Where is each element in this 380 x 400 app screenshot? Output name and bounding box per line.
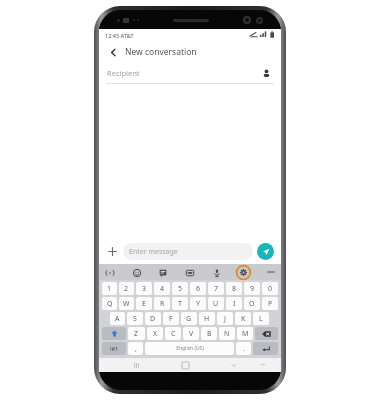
button[interactable]: X [147, 327, 163, 340]
button[interactable]: L [253, 312, 269, 325]
staticText: !#1 [110, 345, 119, 352]
staticText: W [123, 299, 130, 309]
staticText: I [233, 299, 236, 309]
button[interactable]: 8 [226, 282, 242, 295]
button[interactable]: U [208, 297, 224, 310]
button[interactable]: Emoji [130, 266, 143, 279]
staticText: C [171, 329, 176, 339]
button[interactable]: J [217, 312, 233, 325]
button[interactable]: Stickers [156, 266, 169, 279]
button[interactable]: Q [102, 297, 117, 310]
button[interactable]: P [262, 297, 278, 310]
staticText: . [243, 344, 245, 354]
button[interactable]: Keyboard settings [236, 265, 251, 280]
button[interactable]: 1 [102, 282, 117, 295]
staticText: A [115, 314, 120, 324]
button[interactable]: T [172, 297, 188, 310]
button[interactable]: D [145, 312, 161, 325]
button[interactable]: 5 [172, 282, 188, 295]
staticText: Q [107, 299, 113, 309]
button[interactable]: Recents [129, 358, 143, 372]
staticText: 6 [196, 284, 201, 294]
staticText: M [242, 329, 249, 339]
staticText: 8 [232, 284, 237, 294]
staticText: U [213, 299, 219, 309]
button[interactable]: Recipient [99, 63, 281, 83]
button[interactable]: 9 [244, 282, 260, 295]
button[interactable]: 0 [262, 282, 278, 295]
button[interactable]: Space, English US [145, 342, 234, 355]
staticText: T [178, 299, 182, 309]
button[interactable]: Voice input [210, 266, 223, 279]
button[interactable]: Send [257, 243, 274, 260]
button[interactable]: E [136, 297, 152, 310]
button[interactable]: G [181, 312, 197, 325]
button[interactable]: 7 [208, 282, 224, 295]
staticText: S [133, 314, 137, 324]
button[interactable]: I [226, 297, 242, 310]
button[interactable]: H [199, 312, 215, 325]
staticText: 1 [107, 284, 112, 294]
staticText: 12:45 AT&T [105, 32, 134, 39]
staticText: 3 [142, 284, 147, 294]
button[interactable]: K [235, 312, 251, 325]
button[interactable]: N [219, 327, 235, 340]
button[interactable]: 3 [136, 282, 152, 295]
button[interactable]: 2 [119, 282, 134, 295]
button[interactable]: Predictive text [103, 266, 116, 279]
button[interactable]: , [128, 342, 143, 355]
staticText: Recipient [107, 68, 140, 78]
button[interactable]: Z [128, 327, 145, 340]
staticText: R [160, 299, 165, 309]
button[interactable]: V [183, 327, 199, 340]
button[interactable]: Back [227, 358, 241, 372]
button[interactable]: C [165, 327, 181, 340]
button[interactable]: Home [178, 358, 192, 372]
button[interactable]: B [201, 327, 217, 340]
button[interactable]: Add attachment [104, 243, 120, 259]
button[interactable]: GIF keyboard [183, 266, 196, 279]
button[interactable]: Hide keyboard [257, 359, 269, 371]
staticText: L [259, 314, 263, 324]
staticText: D [150, 314, 156, 324]
button[interactable]: O [244, 297, 260, 310]
staticText: N [224, 329, 230, 339]
button[interactable]: . [236, 342, 251, 355]
button[interactable]: Add recipient from contacts [260, 67, 273, 80]
button[interactable]: 6 [190, 282, 206, 295]
staticText: G [186, 314, 192, 324]
button[interactable]: R [154, 297, 170, 310]
button[interactable]: W [119, 297, 134, 310]
staticText: Enter message [129, 247, 178, 257]
button[interactable]: Backspace [255, 327, 278, 340]
staticText: B [207, 329, 212, 339]
staticText: X [153, 329, 158, 339]
button[interactable]: A [110, 312, 125, 325]
button[interactable]: Back [105, 44, 121, 60]
staticText: P [268, 299, 273, 309]
button[interactable]: !#1 [102, 342, 126, 355]
staticText: Y [196, 299, 200, 309]
staticText: 7 [214, 284, 219, 294]
button[interactable]: M [237, 327, 253, 340]
staticText: H [204, 314, 210, 324]
staticText: 0 [268, 284, 273, 294]
button[interactable]: Y [190, 297, 206, 310]
staticText: 9 [250, 284, 255, 294]
staticText: K [241, 314, 246, 324]
button[interactable]: Shift [102, 327, 126, 340]
button[interactable]: Enter message [123, 243, 253, 260]
button[interactable]: Enter [253, 342, 278, 355]
button[interactable]: 4 [154, 282, 170, 295]
staticText: 5 [178, 284, 183, 294]
button[interactable]: F [163, 312, 179, 325]
staticText: E [142, 299, 146, 309]
staticText: V [189, 329, 194, 339]
staticText: English (US) [176, 345, 204, 352]
staticText: O [249, 299, 255, 309]
button[interactable]: S [127, 312, 143, 325]
staticText: F [169, 314, 173, 324]
staticText: Z [134, 329, 139, 339]
button[interactable]: More keyboard options [265, 266, 277, 278]
staticText: , [135, 344, 137, 354]
